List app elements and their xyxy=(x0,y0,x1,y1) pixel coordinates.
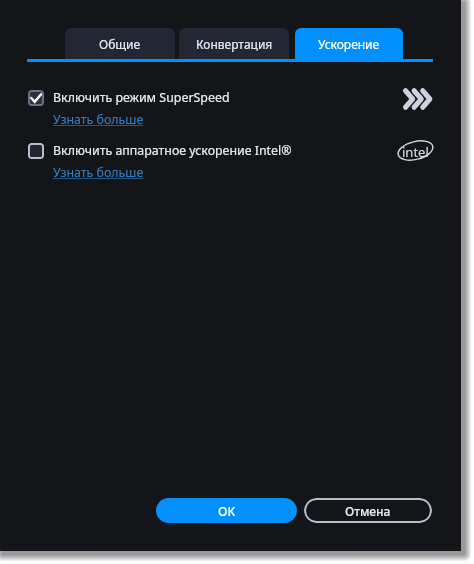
staticText: Отмена xyxy=(345,503,391,519)
staticText: Конвертация xyxy=(196,36,273,52)
staticText: Общие xyxy=(99,36,141,52)
button[interactable]: Узнать больше xyxy=(53,111,144,128)
button[interactable]: Ускорение xyxy=(295,28,403,60)
staticText: intel xyxy=(402,143,429,161)
staticText: Включить аппаратное ускорение Intel® xyxy=(53,142,292,159)
other: SuperSpeed xyxy=(403,88,430,110)
other: Intel xyxy=(397,137,434,164)
button[interactable]: OK xyxy=(156,498,297,523)
button[interactable]: Общие xyxy=(65,28,175,60)
button[interactable]: Узнать больше xyxy=(53,164,144,181)
staticText: Включить режим SuperSpeed xyxy=(53,89,230,106)
staticText: Ускорение xyxy=(318,36,380,52)
button[interactable]: Отмена xyxy=(304,498,432,523)
button[interactable]: Включить аппаратное ускорение Intel® xyxy=(28,143,44,159)
button[interactable]: Включить режим SuperSpeed xyxy=(28,90,44,106)
staticText: OK xyxy=(218,503,235,519)
staticText: Узнать больше xyxy=(53,111,144,128)
button[interactable]: Конвертация xyxy=(179,28,289,60)
staticText: Узнать больше xyxy=(53,164,144,181)
